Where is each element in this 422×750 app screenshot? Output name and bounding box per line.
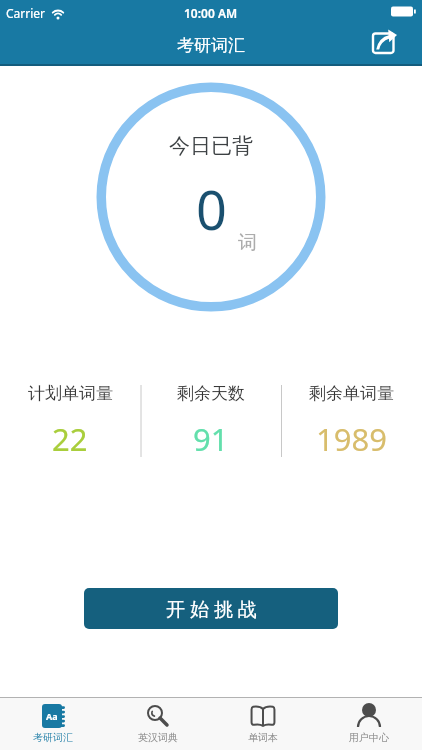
staticText: 考研词汇	[33, 731, 73, 744]
staticText: 今日已背	[169, 133, 253, 159]
staticText: 0	[196, 172, 227, 242]
staticText: 剩余天数	[177, 383, 245, 404]
staticText: 22	[52, 418, 88, 458]
staticText: 91	[193, 418, 229, 458]
button[interactable]	[368, 26, 398, 56]
staticText: 单词本	[248, 731, 278, 744]
staticText: Carrier	[6, 5, 46, 21]
button[interactable]: 英汉词典	[105, 698, 210, 750]
staticText: Aa	[46, 710, 58, 722]
button[interactable]: 单词本	[210, 698, 316, 750]
button[interactable]: 用户中心	[316, 698, 422, 750]
staticText: 词	[238, 231, 257, 255]
button[interactable]: Aa	[0, 698, 105, 750]
staticText: 1989	[316, 418, 387, 458]
staticText: 考研词汇	[177, 35, 245, 56]
staticText: 10:00 AM	[184, 5, 238, 21]
staticText: 开 始 挑 战	[166, 596, 257, 622]
button[interactable]: 开 始 挑 战	[84, 588, 338, 629]
staticText: 用户中心	[349, 731, 389, 744]
staticText: 计划单词量	[28, 383, 113, 404]
staticText: 剩余单词量	[309, 383, 394, 404]
staticText: 英汉词典	[138, 731, 178, 744]
